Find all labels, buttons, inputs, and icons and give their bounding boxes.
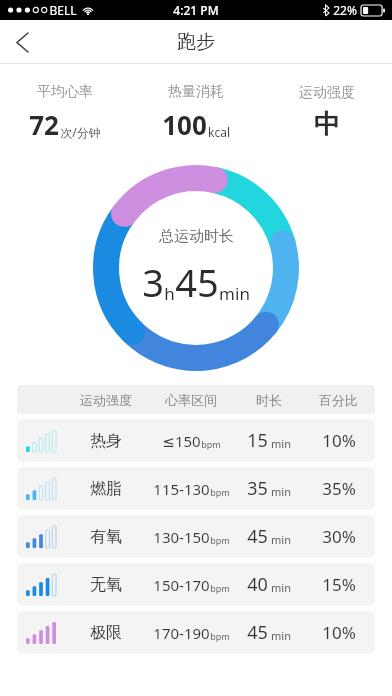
staticText: 170-190 <box>153 623 210 643</box>
staticText: min <box>271 532 291 547</box>
staticText: bpm <box>210 486 230 498</box>
staticText: 热量消耗 <box>168 83 224 101</box>
staticText: 3 <box>142 256 164 308</box>
staticText: 平均心率 <box>37 83 93 101</box>
staticText: 时长 <box>256 392 282 408</box>
staticText: 150-170 <box>153 575 210 595</box>
staticText: 跑步 <box>177 30 215 54</box>
staticText: 总运动时长 <box>159 227 234 246</box>
staticText: bpm <box>210 582 230 594</box>
staticText: 45 <box>247 620 268 645</box>
staticText: 45 <box>175 256 219 308</box>
button[interactable]: 热身 <box>17 419 375 462</box>
staticText: bpm <box>210 630 230 642</box>
staticText: min <box>271 436 291 451</box>
staticText: min <box>219 282 250 305</box>
staticText: 115-130 <box>153 479 210 499</box>
button[interactable]: 极限 <box>17 611 375 654</box>
staticText: 35% <box>322 477 356 500</box>
staticText: 40 <box>247 572 268 597</box>
staticText: 100 <box>162 107 207 142</box>
staticText: 有氧 <box>90 527 122 547</box>
staticText: kcal <box>208 124 230 140</box>
staticText: 热身 <box>90 431 122 451</box>
staticText: 运动强度 <box>80 392 132 408</box>
staticText: 35 <box>247 476 268 501</box>
staticText: 运动强度 <box>299 84 355 102</box>
staticText: 次/分钟 <box>60 124 101 140</box>
staticText: 30% <box>322 525 356 548</box>
staticText: min <box>271 484 291 499</box>
staticText: 130-150 <box>153 527 210 547</box>
staticText: 燃脂 <box>90 479 122 499</box>
button[interactable]: 燃脂 <box>17 467 375 510</box>
staticText: 10% <box>322 621 356 644</box>
staticText: 无氧 <box>90 575 122 595</box>
staticText: 72 <box>29 107 59 142</box>
staticText: 4:21 PM <box>173 2 219 18</box>
staticText: 百分比 <box>319 392 358 408</box>
staticText: ≤150 <box>162 431 201 451</box>
button[interactable]: Back <box>0 20 44 64</box>
staticText: 45 <box>247 524 268 549</box>
staticText: min <box>271 580 291 595</box>
staticText: 中 <box>314 108 340 141</box>
button[interactable]: 无氧 <box>17 563 375 606</box>
staticText: 极限 <box>90 623 122 643</box>
staticText: 10% <box>322 429 356 452</box>
staticText: 15% <box>322 573 356 596</box>
staticText: 心率区间 <box>165 392 217 408</box>
staticText: 22% <box>333 2 357 18</box>
button[interactable]: 有氧 <box>17 515 375 558</box>
staticText: h <box>164 282 175 305</box>
staticText: 15 <box>247 428 268 453</box>
staticText: bpm <box>210 534 230 546</box>
staticText: BELL <box>49 2 77 18</box>
staticText: bpm <box>201 438 221 450</box>
staticText: min <box>271 628 291 643</box>
